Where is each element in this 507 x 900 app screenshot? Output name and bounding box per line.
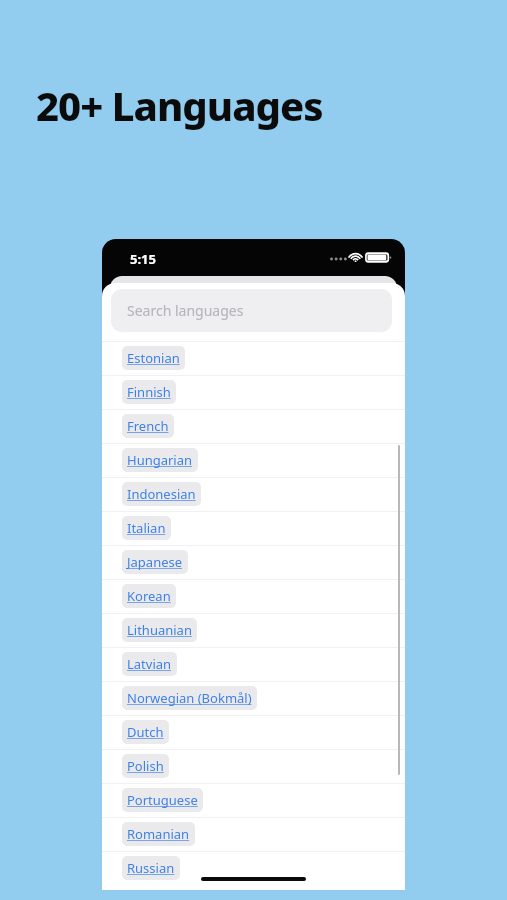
staticText: Search languages [127, 301, 244, 320]
button[interactable]: Japanese [102, 545, 405, 579]
staticText: Italian [127, 519, 166, 537]
button[interactable]: Finnish [102, 375, 405, 409]
button[interactable]: Hungarian [102, 443, 405, 477]
button[interactable]: Russian [102, 851, 405, 885]
staticText: Estonian [127, 349, 180, 367]
button[interactable]: Latvian [102, 647, 405, 681]
staticText: Dutch [127, 723, 164, 741]
button[interactable]: Search languages [111, 289, 392, 332]
staticText: Polish [127, 757, 164, 775]
button[interactable]: Portuguese [102, 783, 405, 817]
button[interactable]: Norwegian (Bokmål) [102, 681, 405, 715]
staticText: Romanian [127, 825, 190, 843]
button[interactable]: Romanian [102, 817, 405, 851]
button[interactable]: Lithuanian [102, 613, 405, 647]
button[interactable]: Korean [102, 579, 405, 613]
staticText: Korean [127, 587, 171, 605]
button[interactable]: Polish [102, 749, 405, 783]
staticText: 20+ Languages [36, 78, 323, 132]
staticText: Indonesian [127, 485, 196, 503]
staticText: Russian [127, 859, 175, 877]
button[interactable]: Dutch [102, 715, 405, 749]
staticText: Finnish [127, 383, 171, 401]
staticText: French [127, 417, 169, 435]
staticText: Japanese [127, 553, 183, 571]
button[interactable]: Estonian [102, 341, 405, 375]
button[interactable]: Indonesian [102, 477, 405, 511]
staticText: Portuguese [127, 791, 198, 809]
staticText: Norwegian (Bokmål) [127, 689, 252, 707]
staticText: Lithuanian [127, 621, 192, 639]
button[interactable]: French [102, 409, 405, 443]
staticText: 5:15 [130, 250, 156, 268]
staticText: Latvian [127, 655, 172, 673]
button[interactable]: Italian [102, 511, 405, 545]
other: Signal, Wi-Fi and battery status [330, 251, 392, 264]
staticText: Hungarian [127, 451, 193, 469]
